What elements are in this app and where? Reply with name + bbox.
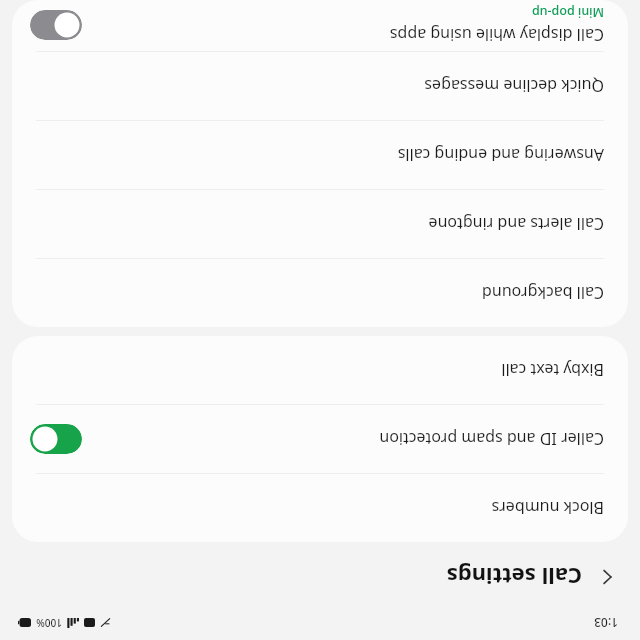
button[interactable]: Call display while using apps [12,0,628,51]
staticText: Answering and ending calls [397,144,604,166]
button[interactable]: Call alerts and ringtone [12,190,628,258]
staticText: Call settings [446,562,582,592]
button[interactable]: Quick decline messages [12,52,628,120]
button[interactable]: Caller ID and spam protection [12,405,628,473]
button[interactable]: Toggle on [30,424,82,454]
staticText: Caller ID and spam protection [379,428,604,450]
button[interactable]: Answering and ending calls [12,121,628,189]
staticText: Call background [482,282,604,304]
staticText: Mini pop-up [531,4,604,21]
button[interactable]: Back [584,554,630,600]
button[interactable]: Bixby text call [12,336,628,404]
staticText: Block numbers [491,497,604,519]
staticText: Call display while using apps [389,24,604,46]
button[interactable]: Toggle off [30,10,82,40]
staticText: 1:03 [594,615,618,631]
button[interactable]: Block numbers [12,474,628,542]
staticText: Bixby text call [501,359,604,381]
button[interactable]: Call background [12,259,628,327]
staticText: Call alerts and ringtone [428,213,604,235]
staticText: 100% [36,616,62,630]
staticText: Quick decline messages [424,75,604,97]
